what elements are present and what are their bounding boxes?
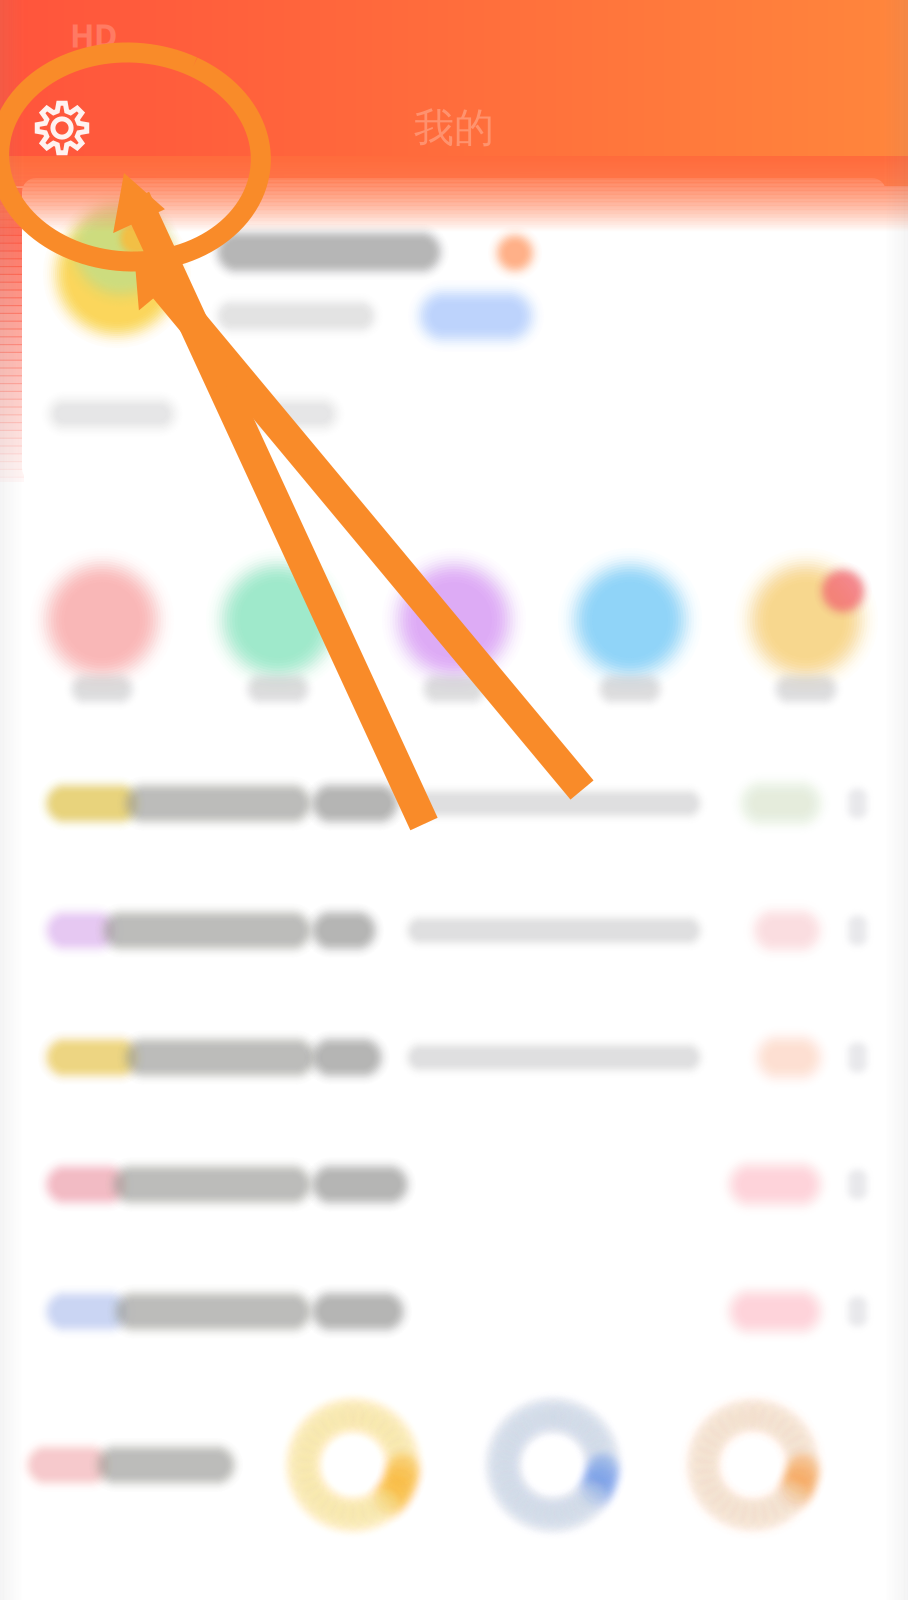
button[interactable] — [0, 1375, 908, 1555]
button[interactable] — [0, 1121, 908, 1248]
button[interactable] — [0, 867, 908, 994]
staticText: 我的 — [414, 103, 494, 152]
button[interactable] — [22, 178, 886, 482]
button[interactable] — [542, 570, 718, 694]
button[interactable] — [0, 740, 908, 867]
button[interactable] — [190, 570, 366, 694]
button[interactable] — [0, 1248, 908, 1375]
staticText: HD — [70, 14, 117, 56]
button[interactable] — [366, 570, 542, 694]
button[interactable]: Settings — [16, 82, 108, 174]
button[interactable] — [718, 570, 894, 694]
button[interactable] — [0, 994, 908, 1121]
button[interactable] — [14, 570, 190, 694]
